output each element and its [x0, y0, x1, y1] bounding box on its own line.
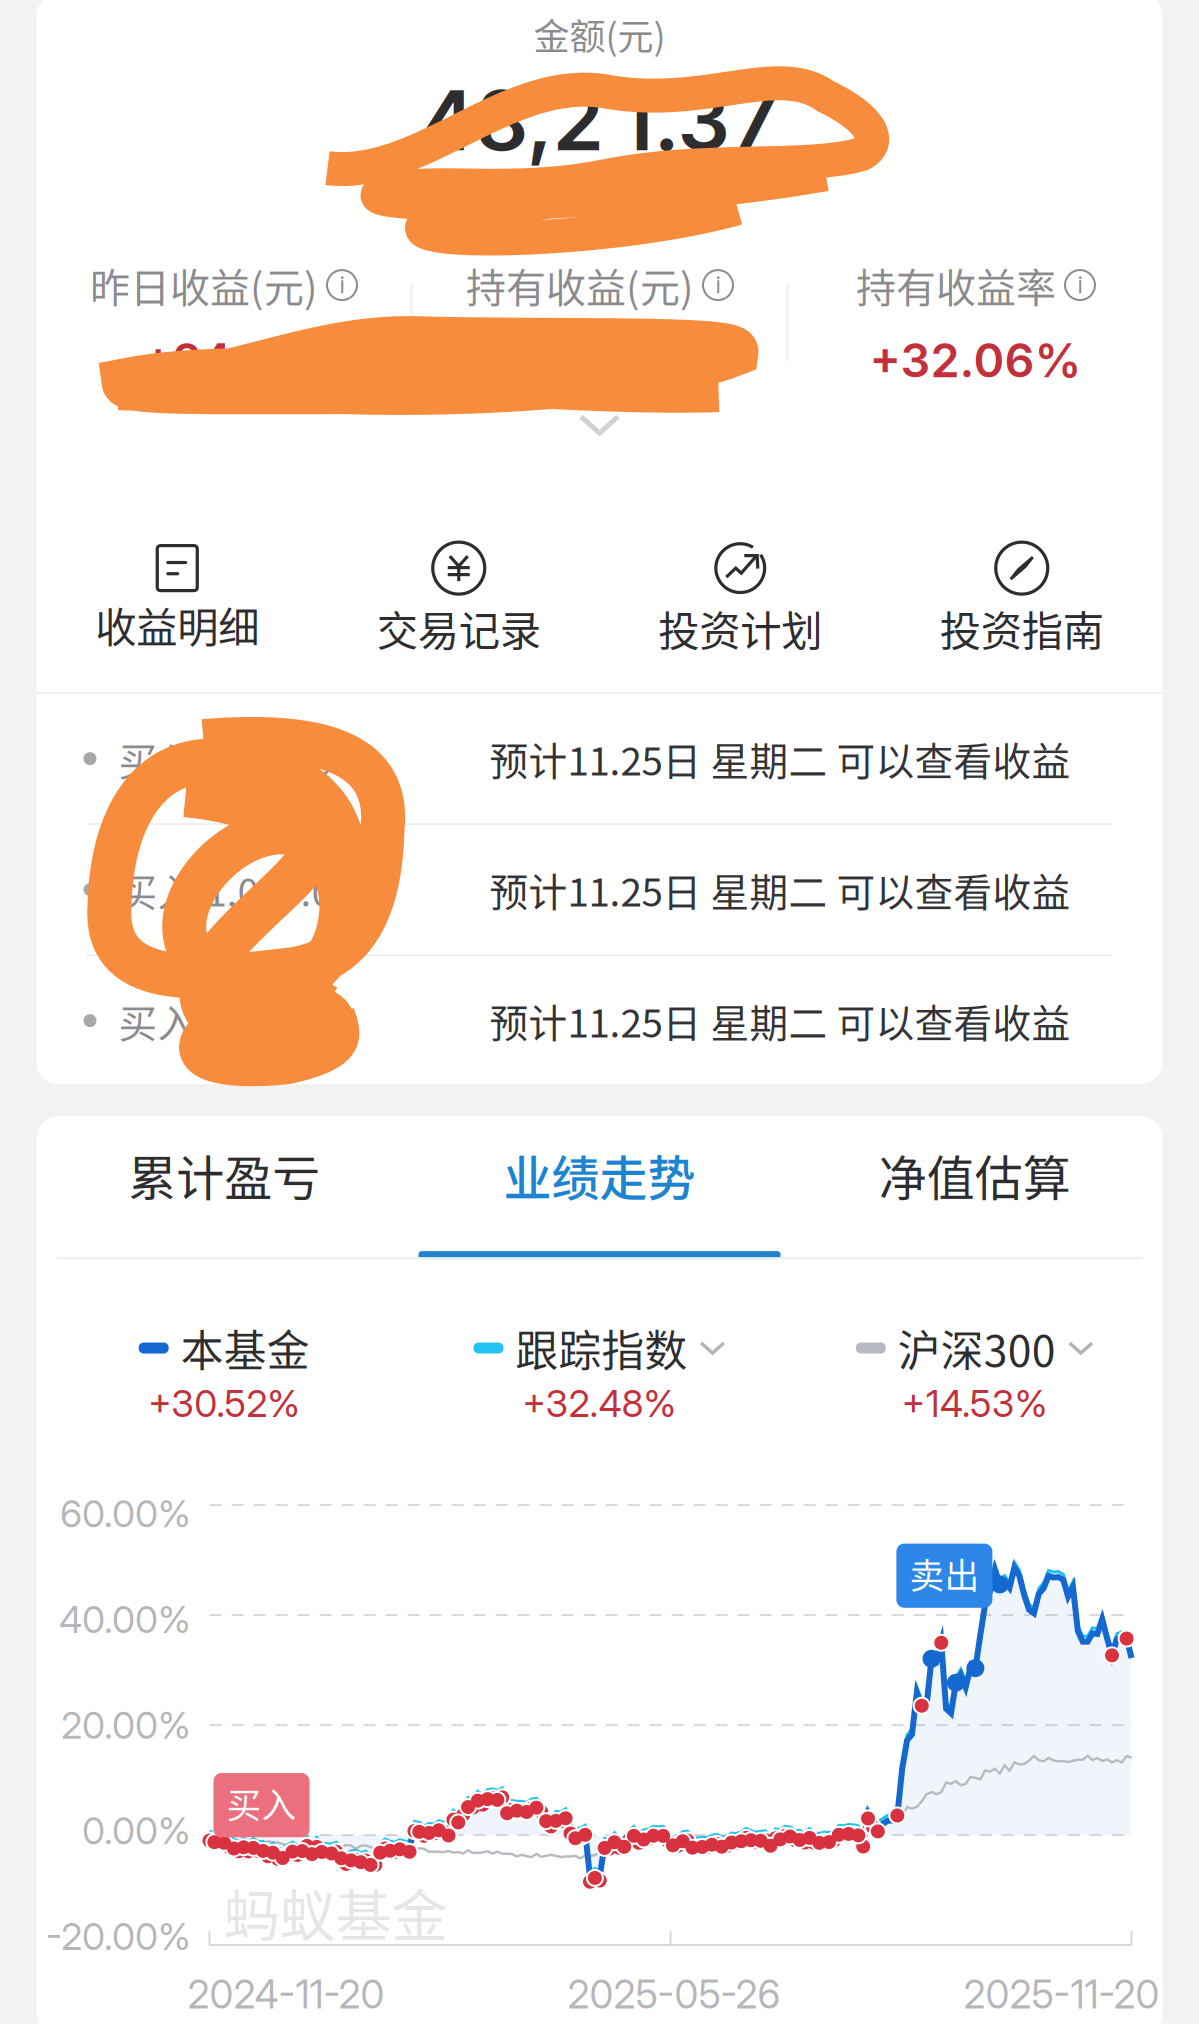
button[interactable]: 业绩走势: [412, 1116, 787, 1259]
staticText: 买入 1,000.00: [118, 731, 353, 787]
staticText: 40.00%: [59, 1597, 191, 1642]
staticText: 预计11.25日 星期二 可以查看收益: [489, 862, 1070, 918]
staticText: 2025-11-20: [963, 1971, 1159, 2018]
staticText: +32.06%: [869, 332, 1081, 389]
staticText: +32.48%: [522, 1381, 676, 1426]
staticText: i: [1077, 271, 1082, 299]
staticText: 业绩走势: [503, 1140, 695, 1210]
staticText: 卖出: [909, 1549, 979, 1599]
staticText: 投资计划: [658, 598, 822, 658]
button[interactable]: 净值估算: [787, 1116, 1162, 1259]
staticText: +30.52%: [148, 1381, 300, 1426]
staticText: 沪深300: [898, 1317, 1056, 1379]
staticText: 收益明细: [95, 595, 259, 654]
staticText: 48,2 1.37: [420, 70, 778, 170]
button[interactable]: 交易记录: [318, 542, 599, 658]
staticText: 预计11.25日 星期二 可以查看收益: [489, 731, 1070, 787]
button[interactable]: 买入 1,000.00: [36, 956, 1162, 1085]
staticText: 预计11.25日 星期二 可以查看收益: [489, 993, 1070, 1049]
staticText: 持有收益率: [856, 256, 1056, 314]
staticText: 昨日收益(元): [90, 256, 318, 314]
staticText: i: [715, 271, 720, 299]
button[interactable]: 买入 1,000.00: [36, 825, 1162, 954]
staticText: 20.00%: [61, 1702, 191, 1748]
staticText: 跟踪指数: [515, 1317, 687, 1379]
staticText: 60.00%: [60, 1491, 191, 1536]
staticText: 2025-05-26: [567, 1971, 780, 2018]
staticText: 买入 1,000.00: [118, 862, 353, 918]
staticText: 0.00%: [82, 1808, 191, 1853]
staticText: 2024-11-20: [187, 1971, 384, 2018]
staticText: 蚂蚁基金: [223, 1871, 447, 1952]
staticText: 投资指南: [940, 598, 1104, 658]
button[interactable]: 收益明细: [36, 546, 318, 654]
button[interactable]: 累计盈亏: [36, 1116, 412, 1259]
staticText: 持有收益(元): [466, 256, 694, 314]
staticText: i: [339, 271, 344, 299]
staticText: +14.53%: [902, 1381, 1048, 1426]
staticText: 累计盈亏: [128, 1140, 320, 1210]
staticText: 买入 1,000.00: [118, 993, 353, 1049]
staticText: 金额(元): [533, 8, 665, 60]
staticText: -20.00%: [46, 1914, 191, 1959]
staticText: 买入: [226, 1778, 296, 1828]
button[interactable]: 投资计划: [599, 542, 881, 658]
staticText: 净值估算: [879, 1140, 1071, 1210]
button[interactable]: 买入 1,000.00: [36, 694, 1162, 823]
staticText: 交易记录: [377, 598, 541, 658]
staticText: 本基金: [181, 1317, 310, 1379]
button[interactable]: 投资指南: [881, 542, 1162, 658]
staticText: +24.83: [142, 332, 304, 389]
button[interactable]: 收起: [36, 414, 1162, 542]
